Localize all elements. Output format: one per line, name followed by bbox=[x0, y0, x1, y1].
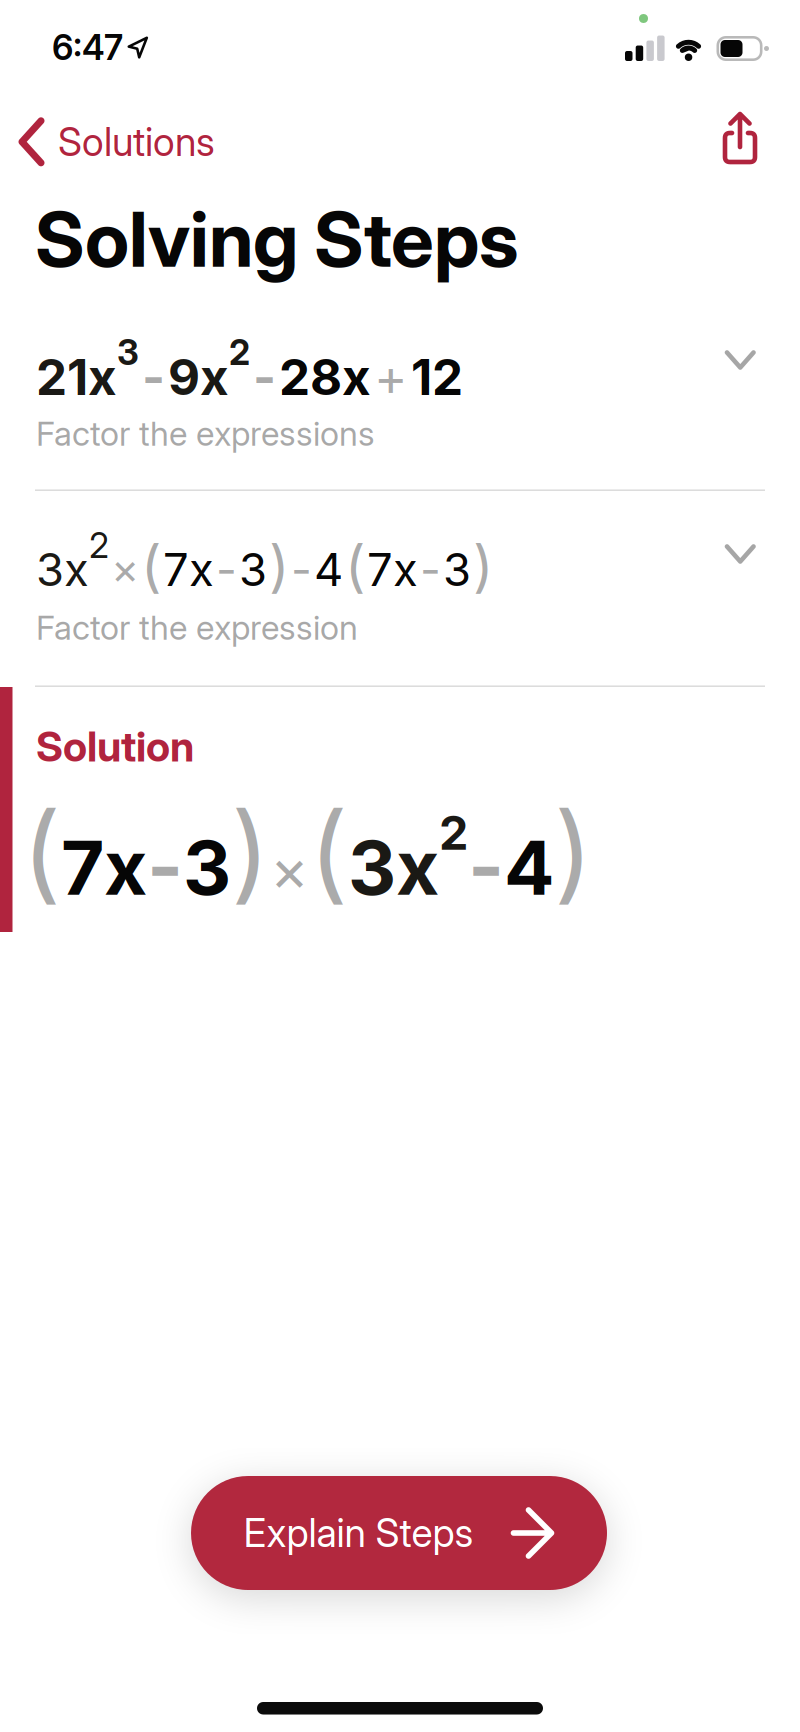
staticText: 28x bbox=[279, 348, 371, 406]
button[interactable]: Solutions bbox=[22, 119, 215, 165]
staticText: - bbox=[147, 821, 183, 912]
button[interactable]: Share bbox=[723, 112, 757, 164]
staticText: ) bbox=[473, 533, 493, 599]
staticText: Solving Steps bbox=[35, 193, 519, 285]
staticText: - bbox=[253, 348, 276, 406]
staticText: 4 bbox=[504, 823, 554, 912]
button[interactable]: 21x3 bbox=[0, 0, 753, 453]
staticText: Explain Steps bbox=[243, 1510, 473, 1556]
staticText: ) bbox=[231, 788, 270, 914]
staticText: 3 bbox=[239, 543, 267, 596]
staticText: 6:47 bbox=[52, 27, 123, 68]
staticText: - bbox=[142, 348, 165, 406]
staticText: 3 bbox=[183, 823, 231, 912]
staticText: - bbox=[216, 543, 237, 596]
staticText: 7x bbox=[367, 543, 418, 596]
staticText: ( bbox=[22, 788, 61, 914]
staticText: - bbox=[420, 543, 441, 596]
staticText: 3x2 bbox=[348, 805, 468, 912]
staticText: Solution bbox=[36, 722, 194, 771]
button[interactable]: Explain Steps bbox=[191, 1476, 607, 1590]
staticText: × bbox=[111, 543, 139, 594]
staticText: ) bbox=[269, 533, 289, 599]
button[interactable]: 3x2 bbox=[0, 0, 753, 647]
staticText: ( bbox=[141, 533, 161, 599]
staticText: 21x3 bbox=[36, 332, 139, 406]
staticText: Solutions bbox=[58, 119, 215, 165]
staticText: ( bbox=[345, 533, 365, 599]
staticText: 9x2 bbox=[168, 332, 250, 406]
staticText: + bbox=[374, 347, 408, 406]
staticText: 4 bbox=[314, 543, 343, 596]
staticText: Factor the expressions bbox=[36, 414, 375, 453]
staticText: 7x bbox=[61, 823, 147, 912]
staticText: ( bbox=[309, 788, 348, 914]
staticText: - bbox=[468, 821, 504, 912]
staticText: 3x2 bbox=[36, 525, 109, 596]
staticText: × bbox=[270, 835, 309, 904]
staticText: 12 bbox=[411, 348, 463, 406]
staticText: 7x bbox=[163, 543, 214, 596]
staticText: 3 bbox=[443, 543, 471, 596]
staticText: - bbox=[291, 543, 312, 596]
staticText: ) bbox=[554, 788, 593, 914]
staticText: Factor the expression bbox=[36, 608, 358, 647]
